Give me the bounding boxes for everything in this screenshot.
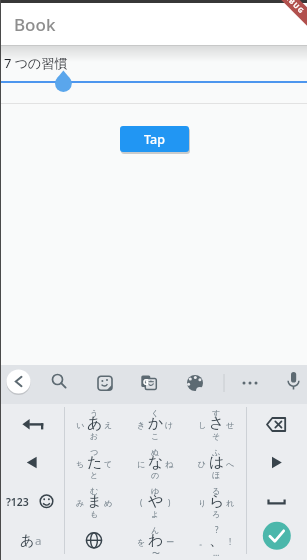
staticText: へ [226,459,235,469]
staticText: DEBUG [278,0,307,17]
button[interactable] [40,365,76,404]
staticText: と [90,470,99,480]
staticText: や [148,492,164,511]
staticText: 、 [209,531,224,550]
staticText: 。 [199,537,207,547]
staticText: に [137,459,146,469]
button[interactable] [87,365,123,404]
staticText: a [35,533,42,549]
staticText: ま [87,492,103,511]
staticText: な [148,453,164,472]
button[interactable] [177,365,213,404]
staticText: 7 つの習慣 [4,54,68,72]
staticText: は [209,453,225,472]
button[interactable]: ( [125,482,186,521]
staticText: て [104,459,113,469]
staticText: か [148,414,164,433]
button[interactable]: ち [64,443,125,482]
button[interactable]: し [186,404,247,443]
staticText: ん [151,525,160,535]
button[interactable] [0,404,64,443]
staticText: の [151,470,160,480]
staticText: せ [226,420,235,430]
staticText: ?123 [6,495,29,509]
staticText: わ [148,531,164,550]
staticText: ー [166,537,174,547]
staticText: ほ [212,470,221,480]
staticText: こ [151,431,160,441]
button[interactable] [232,365,268,404]
staticText: Tap [144,131,165,148]
staticText: ! [229,536,232,547]
staticText: た [87,453,103,472]
button[interactable] [247,521,307,560]
staticText: さ [209,414,225,433]
staticText: れ [226,498,235,508]
staticText: り [198,498,207,508]
staticText: Book [14,13,56,36]
staticText: つ [90,447,99,457]
button[interactable] [247,404,307,443]
button[interactable] [272,365,307,404]
staticText: お [90,431,99,441]
button[interactable] [247,443,307,482]
staticText: む [90,486,99,496]
staticText: も [90,509,99,519]
staticText: … [213,547,220,558]
button[interactable] [0,482,64,521]
staticText: よ [151,509,160,519]
staticText: を [137,537,146,547]
staticText: う [90,408,99,418]
button[interactable]: を [125,521,186,560]
staticText: ろ [212,509,221,519]
button[interactable] [0,521,64,560]
staticText: あ [20,532,35,550]
button[interactable] [64,521,125,560]
staticText: ゆ [151,486,160,496]
button[interactable]: 。 [186,521,247,560]
button[interactable] [1,365,37,404]
staticText: ふ [212,447,221,457]
staticText: ぬ [151,447,160,457]
staticText: ) [168,497,171,508]
staticText: す [212,408,221,418]
staticText: け [165,420,174,430]
staticText: ( [140,497,143,508]
button[interactable]: み [64,482,125,521]
button[interactable]: き [125,404,186,443]
button[interactable] [130,365,166,404]
staticText: し [198,420,207,430]
staticText: そ [212,431,221,441]
staticText: 〜 [152,548,160,558]
staticText: あ [87,414,103,433]
staticText: め [104,498,113,508]
button[interactable]: に [125,443,186,482]
button[interactable]: り [186,482,247,521]
staticText: き [137,420,146,430]
staticText: え [104,420,113,430]
button[interactable]: い [64,404,125,443]
staticText: ? [215,524,219,535]
button[interactable] [247,482,307,521]
button[interactable]: ひ [186,443,247,482]
staticText: G [143,376,149,387]
button[interactable]: 7 つの習慣 [0,45,307,103]
button[interactable]: Tap [120,126,189,152]
button[interactable] [0,443,64,482]
staticText: ら [209,492,225,511]
staticText: み [76,498,85,508]
staticText: ひ [198,459,207,469]
staticText: る [212,486,221,496]
staticText: ち [76,459,85,469]
staticText: ね [165,459,174,469]
staticText: く [151,408,160,418]
staticText: い [76,420,85,430]
